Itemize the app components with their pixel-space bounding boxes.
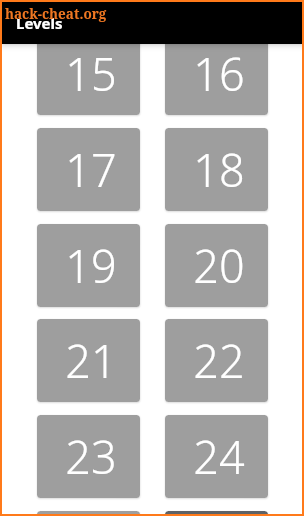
button[interactable]: 25 bbox=[37, 511, 140, 514]
staticText: 24 bbox=[193, 426, 245, 487]
button[interactable]: 20 bbox=[165, 224, 268, 307]
staticText: 22 bbox=[193, 330, 245, 391]
button[interactable]: 18 bbox=[165, 128, 268, 211]
staticText: hack-cheat.org bbox=[5, 5, 107, 23]
staticText: 16 bbox=[193, 43, 245, 104]
staticText: 19 bbox=[65, 235, 117, 296]
button[interactable]: 26 bbox=[165, 511, 268, 514]
staticText: 17 bbox=[65, 139, 117, 200]
button[interactable]: 17 bbox=[37, 128, 140, 211]
button[interactable]: 23 bbox=[37, 415, 140, 498]
button[interactable]: 19 bbox=[37, 224, 140, 307]
staticText: Levels bbox=[16, 13, 63, 33]
staticText: 18 bbox=[193, 139, 245, 200]
staticText: 23 bbox=[65, 426, 117, 487]
button[interactable]: 16 bbox=[165, 32, 268, 115]
button[interactable]: 15 bbox=[37, 32, 140, 115]
button[interactable]: 21 bbox=[37, 319, 140, 402]
staticText: 15 bbox=[65, 43, 117, 104]
staticText: 20 bbox=[193, 235, 245, 296]
staticText: 21 bbox=[65, 330, 117, 391]
button[interactable]: 22 bbox=[165, 319, 268, 402]
button[interactable]: 24 bbox=[165, 415, 268, 498]
